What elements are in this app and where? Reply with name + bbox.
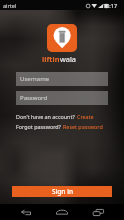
button[interactable]: Username	[16, 72, 108, 86]
button[interactable]: Create	[77, 113, 94, 120]
staticText: 18:17	[103, 2, 118, 9]
staticText: Sign in	[52, 187, 73, 196]
button[interactable]: Sign in	[12, 186, 112, 197]
staticText: Password	[20, 94, 48, 102]
button[interactable]: Back	[16, 204, 36, 220]
button[interactable]: Password	[16, 91, 108, 105]
staticText: wala	[60, 54, 77, 64]
button[interactable]: Home	[52, 204, 72, 220]
staticText: airtel	[3, 2, 17, 9]
staticText: liftin	[42, 54, 60, 64]
staticText: Don't have an account?	[16, 113, 77, 120]
button[interactable]: Reset password	[63, 123, 103, 130]
staticText: Reset password	[63, 123, 103, 130]
staticText: Forgot password?	[16, 123, 63, 130]
staticText: Username	[20, 75, 50, 83]
button[interactable]: Recent apps	[88, 204, 108, 220]
staticText: Create	[77, 113, 94, 120]
